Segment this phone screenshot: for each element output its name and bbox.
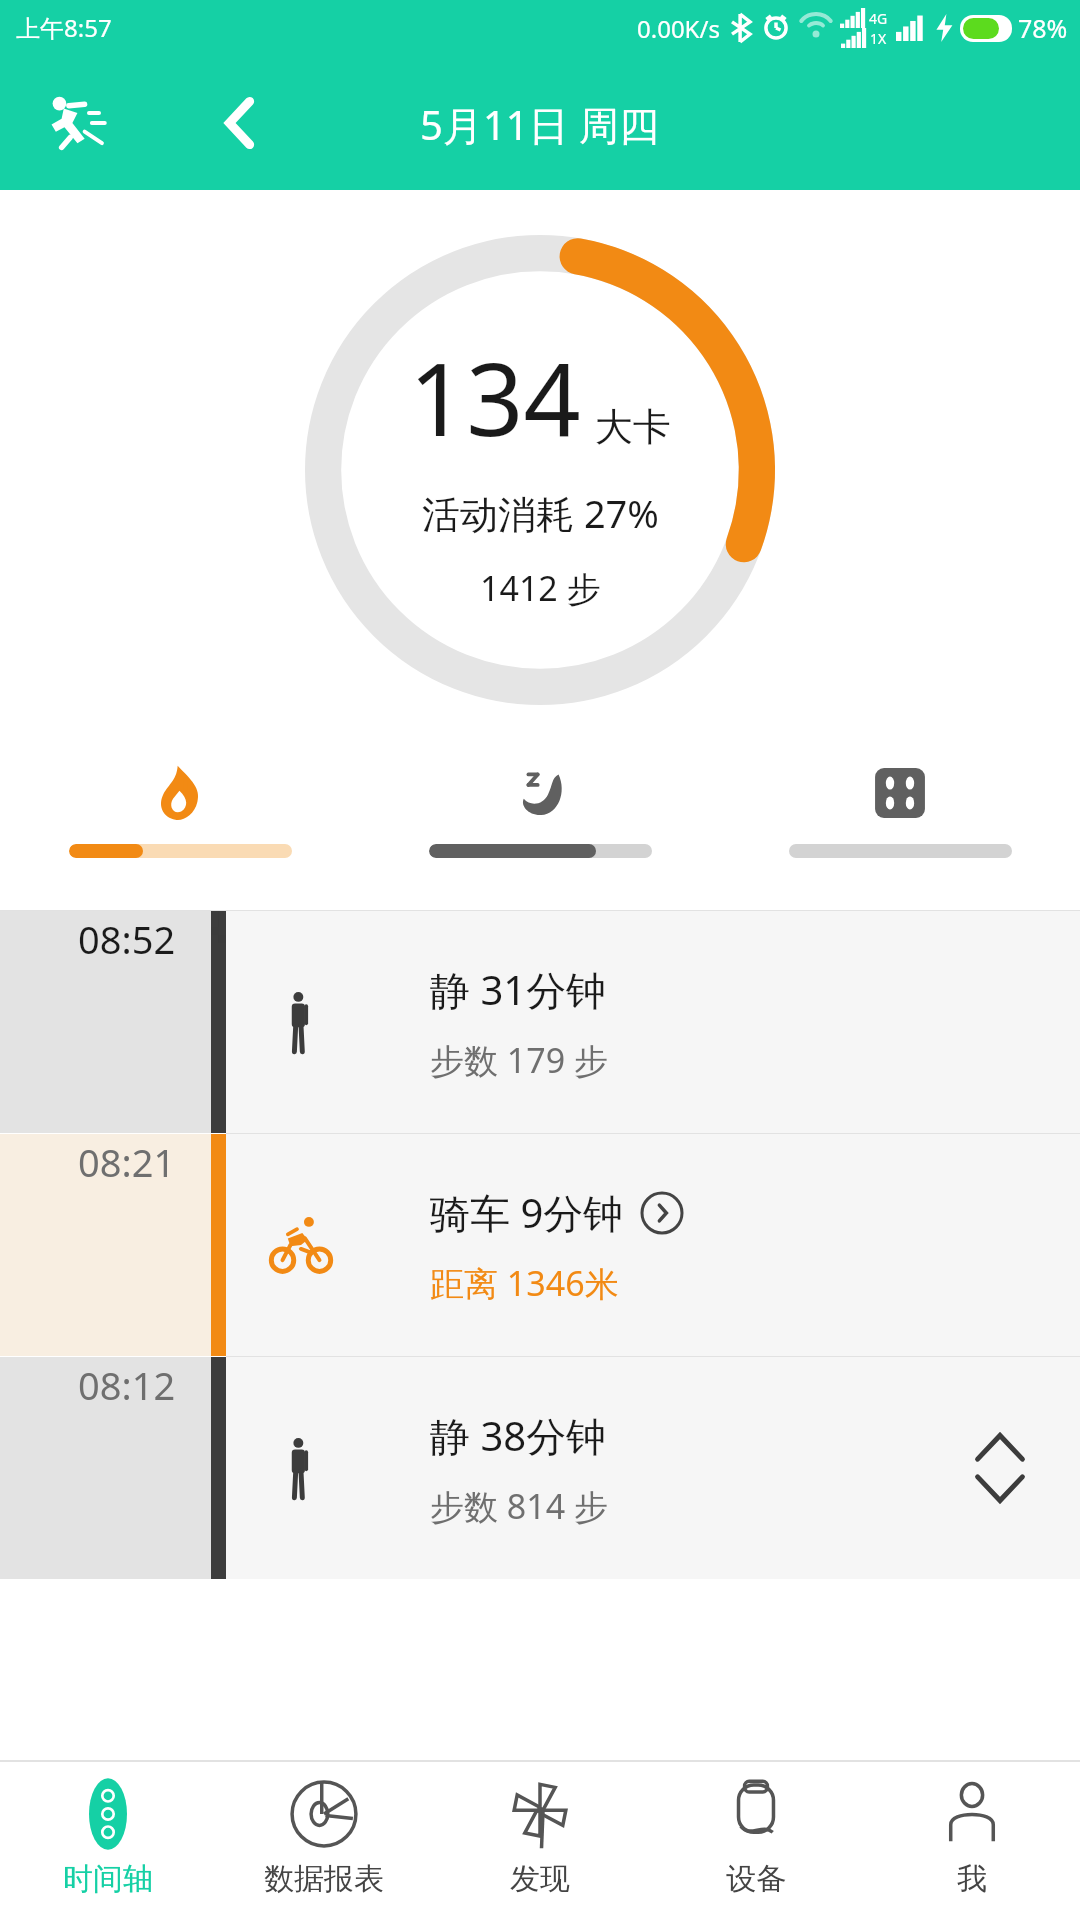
- button[interactable]: 08:21: [0, 1134, 1080, 1356]
- staticText: 设备: [726, 1860, 786, 1898]
- staticText: 1X: [870, 29, 887, 48]
- staticText: 步数 179 步: [430, 1037, 609, 1083]
- other: Expand: [972, 1431, 1028, 1505]
- staticText: 发现: [510, 1860, 570, 1898]
- staticText: 距离 1346米: [430, 1260, 619, 1306]
- staticText: 08:21: [78, 1136, 176, 1188]
- button[interactable]: Back: [205, 87, 277, 159]
- button[interactable]: Exercise: [40, 87, 112, 159]
- button[interactable]: 我: [864, 1762, 1080, 1920]
- staticText: 时间轴: [63, 1860, 153, 1898]
- staticText: 静 31分钟: [430, 962, 607, 1017]
- button[interactable]: [360, 750, 720, 858]
- staticText: 活动消耗 27%: [422, 487, 659, 539]
- button[interactable]: 设备: [648, 1762, 864, 1920]
- staticText: 4G: [869, 9, 888, 28]
- staticText: 我: [957, 1860, 987, 1898]
- button[interactable]: 数据报表: [216, 1762, 432, 1920]
- staticText: 134: [409, 329, 581, 465]
- staticText: 数据报表: [264, 1860, 384, 1898]
- staticText: 5月11日 周四: [420, 97, 660, 152]
- staticText: 08:52: [78, 913, 176, 965]
- staticText: 1412 步: [480, 565, 601, 611]
- staticText: 08:12: [78, 1359, 176, 1411]
- button[interactable]: 发现: [432, 1762, 648, 1920]
- staticText: 静 38分钟: [430, 1408, 607, 1463]
- staticText: 大卡: [595, 403, 671, 451]
- staticText: 骑车 9分钟: [430, 1185, 624, 1240]
- staticText: 步数 814 步: [430, 1483, 609, 1529]
- staticText: 0.00K/s: [637, 12, 720, 45]
- staticText: 上午8:57: [16, 11, 112, 44]
- staticText: 78%: [1018, 11, 1068, 45]
- button[interactable]: 08:12: [0, 1357, 1080, 1579]
- button[interactable]: [0, 750, 360, 858]
- button[interactable]: 时间轴: [0, 1762, 216, 1920]
- button[interactable]: 08:52: [0, 911, 1080, 1133]
- button[interactable]: [720, 750, 1080, 858]
